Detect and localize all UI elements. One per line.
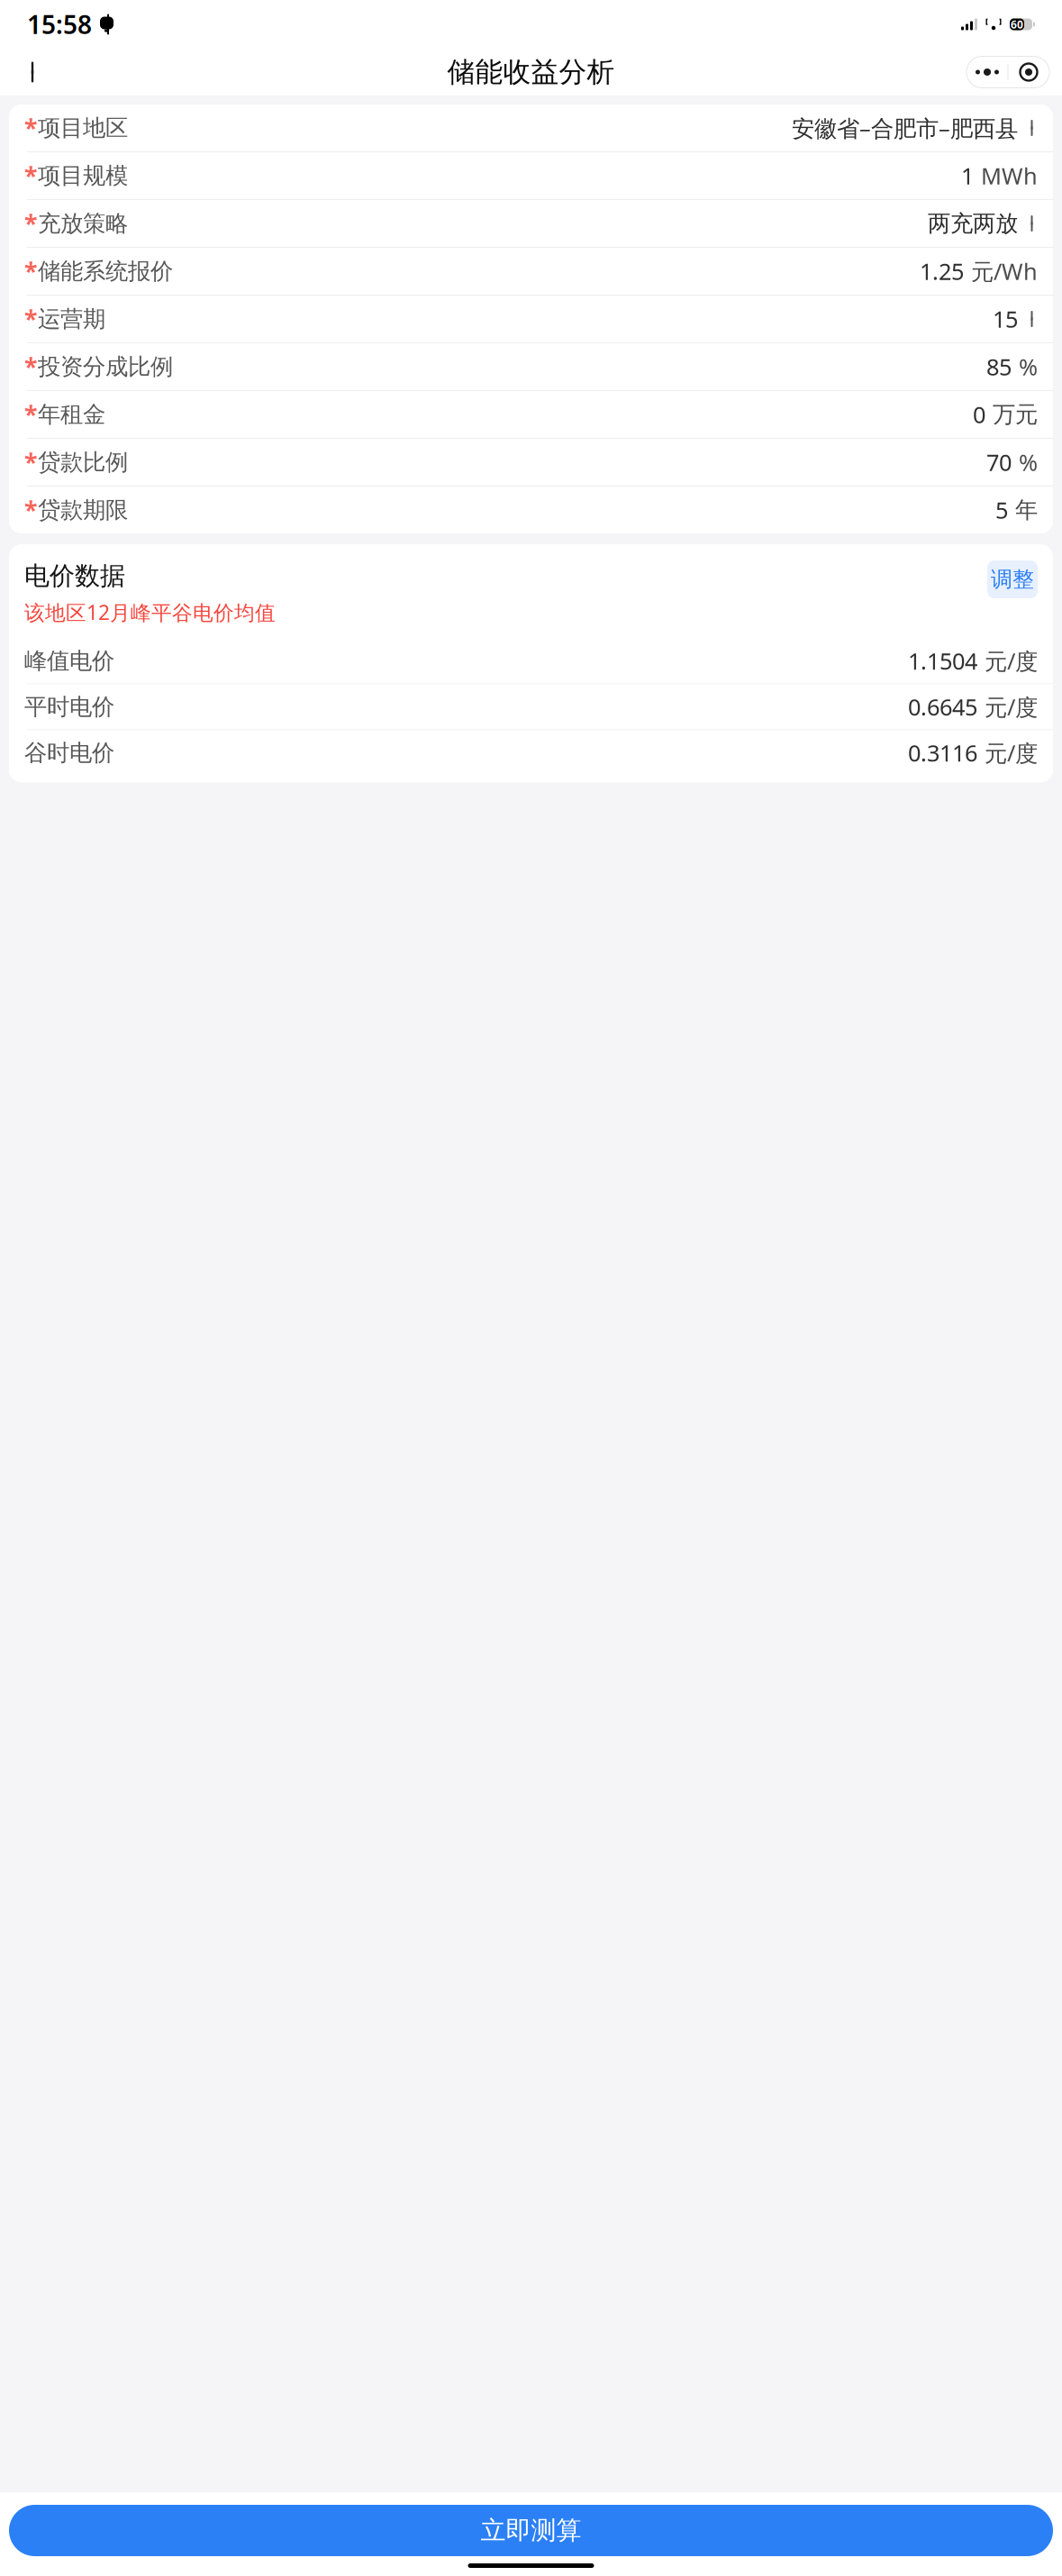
staticText: *: [24, 303, 37, 335]
button[interactable]: 更多: [967, 58, 1008, 86]
button[interactable]: *: [9, 248, 1053, 295]
button[interactable]: *: [9, 105, 1053, 151]
staticText: 峰值电价: [24, 647, 114, 675]
staticText: MWh: [981, 161, 1038, 191]
staticText: *: [24, 494, 37, 526]
staticText: *: [24, 112, 37, 144]
staticText: 充放策略: [38, 209, 128, 237]
button[interactable]: *: [9, 439, 1053, 486]
staticText: *: [24, 160, 37, 192]
staticText: 安徽省–合肥市–肥西县: [792, 113, 1018, 143]
staticText: 0.3116: [908, 738, 977, 768]
staticText: 该地区12月峰平谷电价均值: [24, 599, 276, 626]
staticText: 项目地区: [38, 114, 128, 142]
staticText: 0: [973, 399, 985, 430]
staticText: 15: [993, 304, 1018, 334]
staticText: 70: [986, 447, 1012, 477]
staticText: 元/Wh: [971, 256, 1038, 286]
staticText: 0.6645: [908, 692, 977, 722]
button[interactable]: *: [9, 200, 1053, 247]
staticText: 60: [1011, 17, 1023, 31]
staticText: *: [24, 446, 37, 478]
staticText: 1: [961, 161, 974, 191]
button[interactable]: *: [9, 296, 1053, 342]
staticText: 元/度: [985, 692, 1038, 722]
button[interactable]: *: [9, 343, 1053, 390]
staticText: 1.1504: [908, 646, 977, 676]
button[interactable]: *: [9, 391, 1053, 438]
staticText: 1.25: [920, 256, 964, 286]
staticText: *: [24, 399, 37, 430]
staticText: 年: [1015, 496, 1038, 524]
staticText: 储能收益分析: [447, 55, 615, 89]
staticText: 运营期: [38, 305, 105, 333]
staticText: *: [24, 208, 37, 239]
button[interactable]: 返回: [13, 52, 56, 92]
staticText: 贷款比例: [38, 448, 128, 476]
staticText: 调整: [991, 566, 1034, 593]
staticText: 立即测算: [481, 2515, 581, 2546]
staticText: 项目规模: [38, 162, 128, 190]
staticText: 元/度: [985, 738, 1038, 768]
staticText: 储能系统报价: [38, 257, 173, 285]
staticText: 电价数据: [24, 560, 125, 591]
staticText: 投资分成比例: [38, 353, 173, 381]
staticText: 15:58: [27, 8, 92, 41]
button[interactable]: 关闭: [1008, 58, 1049, 86]
staticText: 5: [995, 495, 1008, 525]
staticText: *: [24, 255, 37, 287]
button[interactable]: *: [9, 487, 1053, 533]
staticText: %: [1019, 352, 1038, 382]
staticText: 谷时电价: [24, 739, 114, 767]
staticText: 贷款期限: [38, 496, 128, 524]
button[interactable]: *: [9, 152, 1053, 199]
staticText: 万元: [993, 400, 1038, 428]
staticText: 年租金: [38, 400, 105, 428]
staticText: 85: [986, 352, 1012, 382]
staticText: %: [1019, 447, 1038, 477]
button[interactable]: 立即测算: [9, 2505, 1053, 2556]
staticText: 两充两放: [928, 209, 1018, 237]
staticText: *: [24, 351, 37, 383]
button[interactable]: 调整: [987, 560, 1038, 598]
staticText: 平时电价: [24, 693, 114, 721]
staticText: 元/度: [985, 646, 1038, 676]
